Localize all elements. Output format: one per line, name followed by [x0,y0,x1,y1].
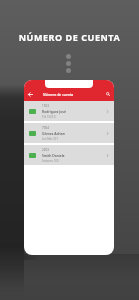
button[interactable]: Search [104,90,112,98]
button[interactable]: Back [26,90,34,98]
button[interactable]: 7004 [24,123,114,143]
staticText: 1503 [42,104,49,108]
staticText: Rodríguez José [42,109,66,114]
staticText: Los Mar 221 [42,137,59,141]
staticText: NÚMERO DE CUENTA [0,31,139,43]
staticText: Pol 1523 S [42,115,56,119]
staticText: 7004 [42,126,49,130]
staticText: Smith Daniela [42,153,65,158]
staticText: Gómez Adrian [42,131,65,136]
button[interactable]: 1503 [24,101,114,121]
staticText: 2203 [42,148,49,152]
button[interactable]: 2203 [24,145,114,165]
staticText: Invierno 100 [42,159,59,163]
staticText: Número de cuenta [43,92,74,97]
